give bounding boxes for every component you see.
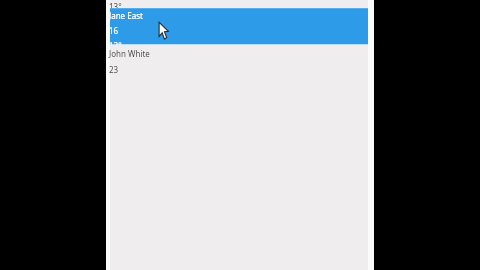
button[interactable]: 13° [110, 0, 368, 8]
other: Pointer [158, 22, 172, 40]
staticText: 13° [109, 1, 122, 9]
staticText: 13° [109, 79, 122, 80]
button[interactable]: John White [110, 45, 368, 80]
staticText: 13° [109, 40, 122, 45]
button[interactable]: Jane East [110, 8, 368, 45]
staticText: Jane East [109, 10, 143, 21]
staticText: 16 [109, 25, 119, 36]
staticText: 23 [109, 64, 119, 75]
staticText: John White [109, 48, 150, 59]
